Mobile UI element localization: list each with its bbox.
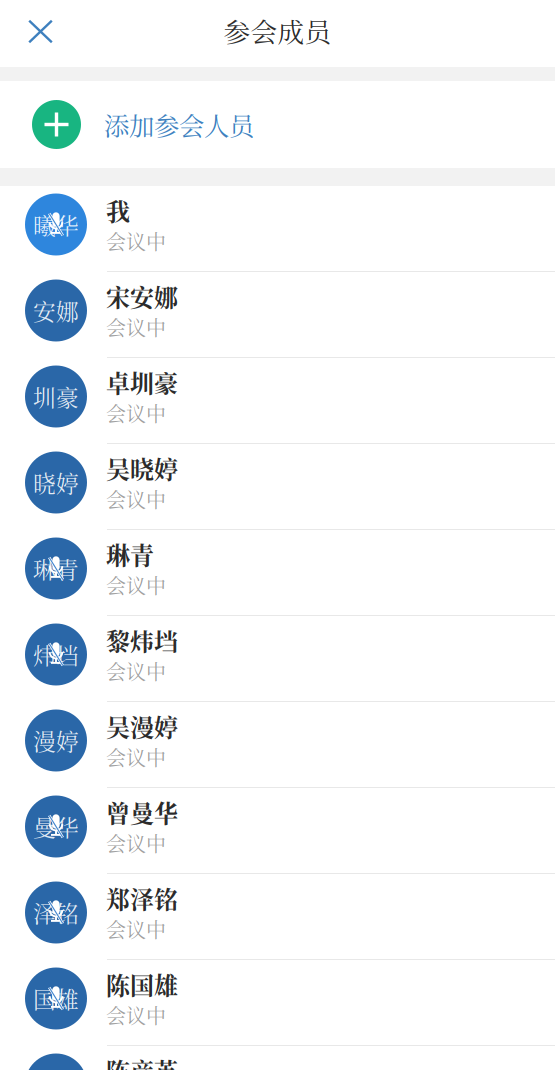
staticText: 国雄 bbox=[33, 982, 79, 1015]
staticText: 曦华 bbox=[33, 208, 79, 241]
button[interactable]: 炜垱 bbox=[0, 616, 555, 702]
staticText: 炜垱 bbox=[33, 638, 79, 671]
staticText: 漫婷 bbox=[33, 724, 79, 757]
button[interactable]: 曼华 bbox=[0, 788, 555, 874]
staticText: 会议中 bbox=[106, 915, 166, 943]
button[interactable]: 彦英 bbox=[0, 1046, 555, 1070]
staticText: 参会成员 bbox=[223, 11, 331, 50]
staticText: 会议中 bbox=[106, 829, 166, 857]
button[interactable]: 琳青 bbox=[0, 530, 555, 616]
staticText: 曼华 bbox=[33, 810, 79, 843]
button[interactable]: 曦华 bbox=[0, 186, 555, 272]
staticText: 琳青 bbox=[33, 552, 79, 585]
staticText: 会议中 bbox=[106, 743, 166, 771]
staticText: 曾曼华 bbox=[106, 795, 178, 829]
staticText: 晓婷 bbox=[33, 466, 79, 499]
button[interactable]: 添加参会人员 bbox=[0, 81, 555, 168]
staticText: 郑泽铭 bbox=[106, 881, 178, 915]
staticText: 会议中 bbox=[106, 313, 166, 341]
button[interactable]: 泽铭 bbox=[0, 874, 555, 960]
button[interactable]: 国雄 bbox=[0, 960, 555, 1046]
staticText: 我 bbox=[106, 193, 130, 227]
staticText: 琳青 bbox=[106, 537, 154, 571]
staticText: 圳豪 bbox=[33, 380, 79, 413]
staticText: 添加参会人员 bbox=[104, 106, 254, 143]
button[interactable]: 安娜 bbox=[0, 272, 555, 358]
staticText: 会议中 bbox=[106, 227, 166, 255]
staticText: 会议中 bbox=[106, 399, 166, 427]
button[interactable]: 圳豪 bbox=[0, 358, 555, 444]
staticText: 会议中 bbox=[106, 657, 166, 685]
button[interactable]: 漫婷 bbox=[0, 702, 555, 788]
staticText: 陈国雄 bbox=[106, 967, 178, 1001]
staticText: 会议中 bbox=[106, 1001, 166, 1029]
staticText: 吴晓婷 bbox=[106, 451, 178, 485]
staticText: 陈彦英 bbox=[106, 1053, 178, 1070]
staticText: 卓圳豪 bbox=[106, 365, 178, 399]
staticText: 吴漫婷 bbox=[106, 709, 178, 743]
button[interactable]: Close bbox=[0, 9, 65, 57]
staticText: 安娜 bbox=[33, 294, 79, 327]
staticText: 会议中 bbox=[106, 485, 166, 513]
staticText: 泽铭 bbox=[33, 896, 79, 929]
button[interactable]: 晓婷 bbox=[0, 444, 555, 530]
staticText: 会议中 bbox=[106, 571, 166, 599]
staticText: 黎炜垱 bbox=[106, 623, 178, 657]
staticText: 宋安娜 bbox=[106, 279, 178, 313]
